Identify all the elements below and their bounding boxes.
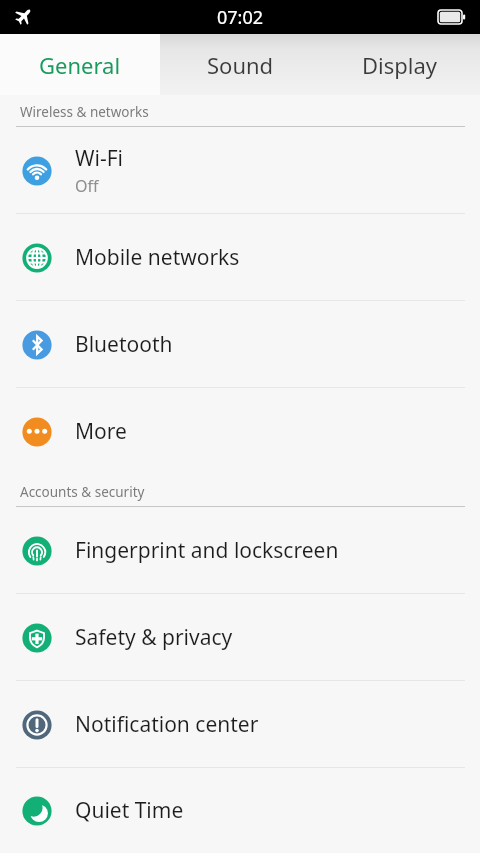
staticText: Quiet Time (75, 796, 184, 825)
button[interactable]: Safety & privacy (0, 594, 480, 681)
staticText: 07:02 (217, 5, 264, 30)
button[interactable]: Display (320, 34, 480, 95)
button[interactable]: General (0, 34, 160, 95)
button[interactable]: Fingerprint and lockscreen (0, 507, 480, 594)
staticText: Sound (207, 50, 274, 80)
button[interactable]: Bluetooth (0, 301, 480, 388)
button[interactable]: Sound (160, 34, 320, 95)
staticText: Notification center (75, 710, 259, 739)
button[interactable]: More (0, 388, 480, 475)
button[interactable]: Quiet Time (0, 768, 480, 853)
staticText: Off (75, 175, 99, 197)
staticText: Wi-Fi (75, 144, 124, 173)
staticText: General (39, 50, 121, 80)
staticText: Display (362, 50, 438, 80)
staticText: Fingerprint and lockscreen (75, 536, 339, 565)
staticText: More (75, 417, 127, 446)
staticText: Safety & privacy (75, 623, 233, 652)
staticText: Wireless & networks (20, 103, 149, 121)
staticText: Accounts & security (20, 483, 145, 501)
button[interactable]: Wi-Fi (0, 127, 480, 214)
button[interactable]: Notification center (0, 681, 480, 768)
staticText: Bluetooth (75, 330, 173, 359)
button[interactable]: Mobile networks (0, 214, 480, 301)
staticText: Mobile networks (75, 243, 240, 272)
